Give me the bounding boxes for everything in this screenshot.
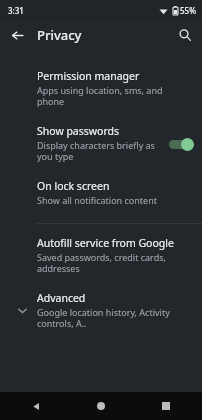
button[interactable]: Recent apps bbox=[152, 392, 180, 420]
staticText: On lock screen bbox=[37, 179, 110, 193]
button[interactable]: Show passwords bbox=[0, 116, 202, 171]
staticText: Privacy bbox=[37, 26, 82, 44]
staticText: 55% bbox=[180, 5, 196, 16]
staticText: 3:31 bbox=[8, 5, 24, 16]
button[interactable]: Advanced bbox=[0, 283, 202, 338]
staticText: Show passwords bbox=[37, 124, 120, 138]
staticText: Saved passwords, credit cards, addresses bbox=[37, 251, 192, 275]
staticText: Advanced bbox=[37, 291, 86, 305]
staticText: Apps using location, sms, and phone bbox=[37, 84, 192, 108]
staticText: Permission manager bbox=[37, 69, 140, 83]
button[interactable]: On lock screen bbox=[0, 171, 202, 214]
staticText: Google location history, Activity contro… bbox=[37, 306, 192, 330]
button[interactable]: Search bbox=[172, 22, 198, 48]
staticText: Show all notification content bbox=[37, 194, 157, 206]
button[interactable]: Back bbox=[22, 392, 50, 420]
staticText: Display characters briefly as you type bbox=[37, 139, 164, 163]
button[interactable]: Permission manager bbox=[0, 61, 202, 116]
button[interactable]: Autofill service from Google bbox=[0, 228, 202, 283]
button[interactable]: Home bbox=[87, 392, 115, 420]
button[interactable]: Back bbox=[4, 22, 30, 48]
staticText: Autofill service from Google bbox=[37, 236, 174, 250]
button[interactable]: Show passwords toggle bbox=[168, 136, 196, 152]
